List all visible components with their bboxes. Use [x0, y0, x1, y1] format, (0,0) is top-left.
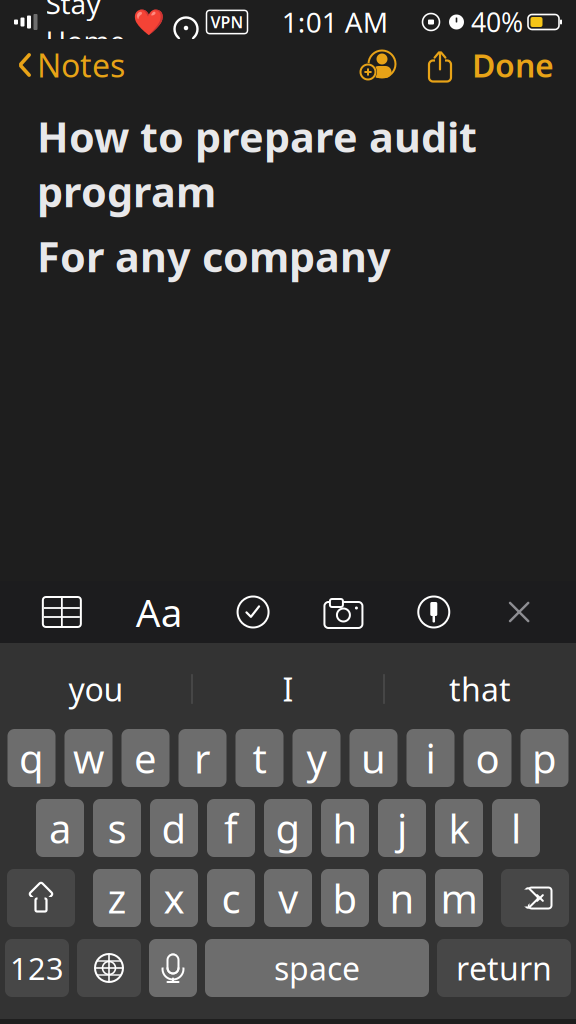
button[interactable]: Checklist — [225, 583, 282, 640]
button[interactable]: x — [150, 869, 198, 927]
button[interactable]: Camera — [311, 583, 375, 641]
button[interactable]: 123 — [5, 939, 69, 997]
staticText: f — [224, 801, 238, 854]
button[interactable]: Shift — [7, 869, 75, 927]
staticText: Done — [472, 44, 554, 86]
button[interactable]: Markup — [405, 583, 462, 640]
staticText: a — [49, 801, 71, 854]
staticText: l — [511, 801, 521, 854]
button[interactable]: I — [192, 661, 383, 717]
staticText: h — [332, 801, 357, 854]
staticText: w — [73, 731, 104, 784]
staticText: Notes — [37, 44, 125, 86]
button[interactable]: g — [264, 799, 312, 857]
staticText: e — [134, 731, 157, 784]
staticText: b — [332, 871, 357, 924]
staticText: v — [278, 871, 298, 924]
staticText: j — [397, 801, 407, 854]
staticText: How to prepare audit program — [37, 109, 477, 219]
staticText: return — [456, 947, 552, 989]
staticText: q — [19, 731, 44, 784]
button[interactable]: m — [435, 869, 483, 927]
button[interactable]: b — [321, 869, 369, 927]
button[interactable]: l — [492, 799, 540, 857]
button[interactable]: Next Keyboard — [77, 939, 141, 997]
staticText: that — [449, 668, 511, 710]
button[interactable]: z — [93, 869, 141, 927]
staticText: k — [448, 801, 469, 854]
button[interactable]: v — [264, 869, 312, 927]
button[interactable]: Notes — [0, 36, 125, 94]
button[interactable]: space — [205, 939, 429, 997]
staticText: u — [361, 731, 386, 784]
button[interactable]: Delete — [501, 869, 569, 927]
staticText: n — [389, 871, 414, 924]
staticText: ❤️ — [132, 7, 164, 36]
button[interactable]: t — [235, 729, 283, 787]
staticText: VPN — [210, 11, 243, 33]
staticText: z — [107, 871, 126, 924]
button[interactable]: i — [406, 729, 454, 787]
button[interactable]: Dictation — [149, 939, 197, 997]
staticText: 40% — [471, 4, 523, 40]
staticText: t — [252, 731, 266, 784]
button[interactable]: Done — [472, 36, 576, 94]
staticText: 1:01 AM — [282, 3, 388, 41]
staticText: you — [68, 668, 123, 710]
button[interactable]: y — [292, 729, 340, 787]
button[interactable]: n — [378, 869, 426, 927]
staticText: d — [161, 801, 186, 854]
button[interactable]: d — [150, 799, 198, 857]
button[interactable]: s — [93, 799, 141, 857]
staticText: g — [275, 801, 300, 854]
button[interactable]: Share — [408, 40, 472, 90]
staticText: I — [282, 668, 293, 710]
button[interactable]: p — [520, 729, 568, 787]
button[interactable]: Format — [124, 574, 195, 650]
button[interactable]: Close Keyboard — [492, 585, 546, 639]
button[interactable]: u — [349, 729, 397, 787]
button[interactable]: w — [64, 729, 112, 787]
staticText: p — [532, 731, 557, 784]
staticText: y — [306, 731, 326, 784]
staticText: r — [194, 731, 211, 784]
button[interactable]: Add People — [346, 41, 408, 89]
staticText: i — [425, 731, 435, 784]
button[interactable]: f — [207, 799, 255, 857]
button[interactable]: o — [463, 729, 511, 787]
staticText: c — [221, 871, 240, 924]
staticText: 123 — [10, 948, 64, 988]
button[interactable]: return — [437, 939, 571, 997]
staticText: m — [440, 871, 477, 924]
staticText: x — [163, 871, 184, 924]
button[interactable]: a — [36, 799, 84, 857]
button[interactable]: r — [178, 729, 226, 787]
button[interactable]: Table — [30, 584, 94, 640]
staticText: o — [475, 731, 499, 784]
staticText: For any company — [37, 229, 391, 284]
button[interactable]: j — [378, 799, 426, 857]
staticText: space — [274, 947, 360, 989]
button[interactable]: c — [207, 869, 255, 927]
button[interactable]: e — [121, 729, 169, 787]
staticText: s — [107, 801, 126, 854]
button[interactable]: h — [321, 799, 369, 857]
button[interactable]: q — [7, 729, 55, 787]
button[interactable]: k — [435, 799, 483, 857]
button[interactable]: that — [384, 661, 575, 717]
button[interactable]: you — [0, 661, 191, 717]
staticText: Stay Home — [45, 0, 125, 59]
staticText: Aa — [136, 586, 183, 638]
